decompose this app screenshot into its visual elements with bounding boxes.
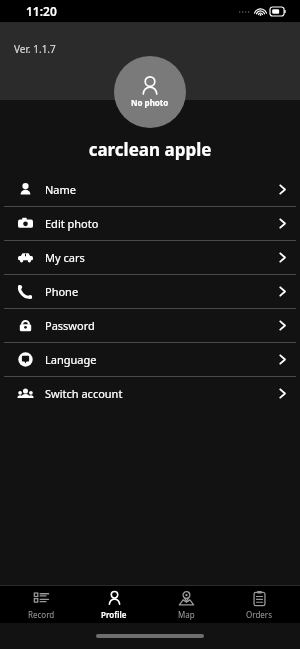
staticText: carclean apple [0,138,300,161]
staticText: Switch account [45,386,123,401]
button[interactable]: Phone [0,275,300,308]
staticText: Language [45,352,97,367]
staticText: My cars [45,250,85,265]
staticText: Profile [101,609,127,620]
staticText: Ver. 1.1.7 [14,42,56,56]
button[interactable]: Record [9,588,73,622]
staticText: Password [45,318,95,333]
button[interactable]: Map [154,588,218,622]
staticText: Name [45,182,77,197]
button[interactable]: Password [0,309,300,342]
staticText: 11:20 [26,3,57,19]
button[interactable]: Edit photo [0,207,300,240]
button[interactable]: Language [0,343,300,376]
button[interactable]: Orders [227,588,291,622]
staticText: Phone [45,284,79,299]
button[interactable]: Switch account [0,377,300,410]
button[interactable]: Profile photo [114,56,186,128]
staticText: Edit photo [45,216,99,231]
button[interactable]: Profile [82,588,146,622]
staticText: Record [28,609,55,620]
staticText: No photo [131,97,169,108]
button[interactable]: My cars [0,241,300,274]
staticText: Map [178,609,195,620]
staticText: Orders [246,609,272,620]
button[interactable]: Name [0,173,300,206]
